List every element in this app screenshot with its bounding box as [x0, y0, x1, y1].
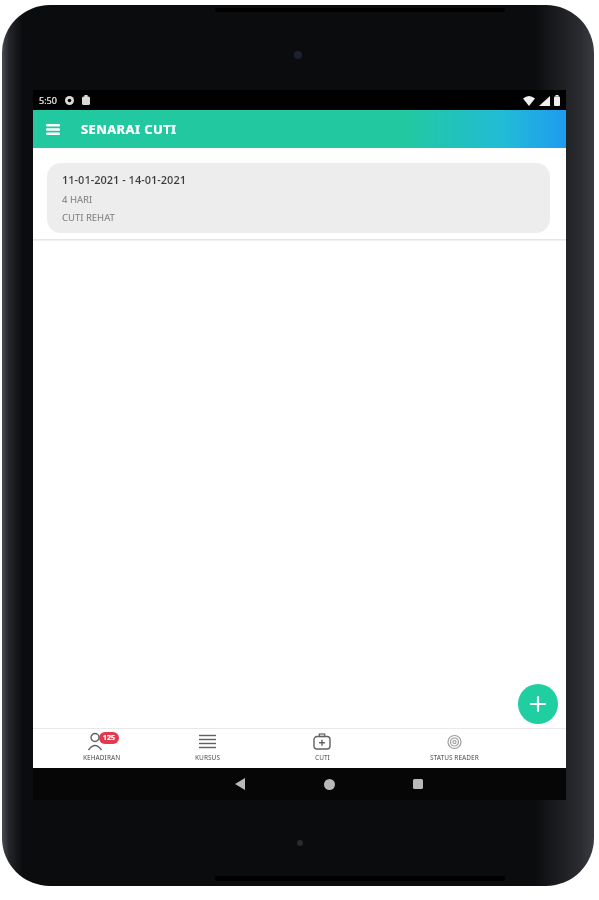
button[interactable]: [39, 115, 67, 143]
staticText: 11-01-2021 - 14-01-2021: [62, 172, 186, 187]
button[interactable]: KURSUS: [162, 732, 252, 768]
button[interactable]: 125: [57, 732, 147, 768]
button[interactable]: [407, 773, 429, 795]
button[interactable]: CUTI: [277, 732, 367, 768]
button[interactable]: [229, 773, 251, 795]
button[interactable]: 11-01-2021 - 14-01-2021: [47, 163, 550, 233]
staticText: KEHADIRAN: [83, 753, 121, 762]
staticText: 5:50: [39, 94, 57, 106]
staticText: STATUS READER: [430, 753, 479, 762]
button[interactable]: STATUS READER: [409, 732, 499, 768]
staticText: KURSUS: [195, 753, 220, 762]
button[interactable]: [318, 773, 340, 795]
button[interactable]: [518, 684, 558, 724]
staticText: CUTI REHAT: [62, 211, 115, 224]
staticText: 4 HARI: [62, 193, 93, 206]
staticText: SENARAI CUTI: [81, 120, 177, 138]
staticText: CUTI: [315, 753, 330, 762]
staticText: 125: [103, 733, 116, 743]
